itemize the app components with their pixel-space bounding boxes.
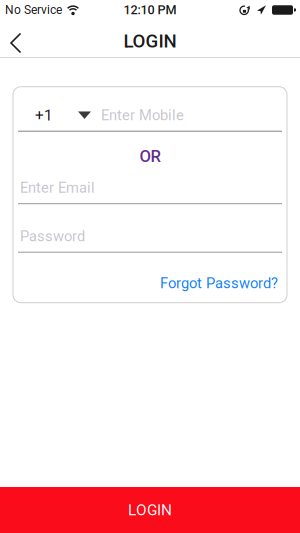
staticText: No Service xyxy=(5,3,62,17)
staticText: LOGIN xyxy=(128,501,172,519)
button[interactable]: Back xyxy=(0,24,22,52)
button[interactable]: Country code xyxy=(35,106,91,124)
staticText: +1 xyxy=(35,106,53,124)
button[interactable]: LOGIN xyxy=(0,487,300,533)
staticText: Password xyxy=(20,228,85,245)
staticText: Enter Mobile xyxy=(101,107,184,124)
staticText: 12:10 PM xyxy=(123,3,176,17)
staticText: OR xyxy=(139,146,160,166)
staticText: Enter Email xyxy=(20,179,95,196)
staticText: LOGIN xyxy=(123,30,176,52)
button[interactable]: Forgot Password? xyxy=(160,275,278,292)
staticText: Forgot Password? xyxy=(160,275,278,292)
